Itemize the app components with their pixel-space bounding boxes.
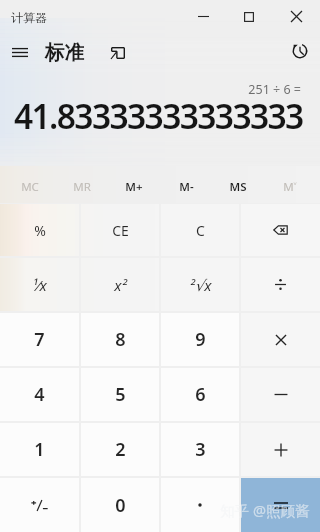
staticText: 知乎 @照顾酱	[220, 500, 310, 520]
button[interactable]	[241, 478, 320, 532]
staticText: 1	[34, 437, 45, 462]
staticText: MR	[73, 179, 91, 195]
staticText: 41.83333333333333	[14, 93, 303, 139]
button[interactable]: Maximize	[226, 0, 272, 33]
staticText: 3	[195, 437, 206, 462]
button[interactable]: Minimize	[180, 0, 226, 33]
button[interactable]: %	[0, 204, 79, 256]
button[interactable]: 9	[161, 313, 239, 366]
button[interactable]: 7	[0, 313, 79, 366]
staticText: 0	[115, 493, 126, 518]
staticText: 5	[115, 382, 126, 407]
staticText: MS	[229, 179, 247, 195]
button[interactable]	[241, 368, 320, 421]
button[interactable]: 1	[0, 423, 79, 476]
button[interactable]: 5	[81, 368, 159, 421]
button[interactable]: x²	[81, 258, 159, 311]
button[interactable]: ²√x	[161, 258, 239, 311]
button[interactable]: MS	[212, 171, 264, 203]
button[interactable]	[241, 313, 320, 366]
staticText: 6	[195, 382, 206, 407]
button[interactable]	[0, 478, 79, 532]
staticText: 4	[34, 382, 45, 407]
staticText: C	[196, 221, 205, 240]
staticText: MC	[21, 179, 39, 195]
staticText: x²	[114, 275, 127, 295]
staticText: CE	[112, 221, 129, 240]
staticText: M+	[125, 179, 143, 195]
staticText: 标准	[45, 40, 84, 65]
button[interactable]: 8	[81, 313, 159, 366]
staticText: 9	[195, 327, 206, 352]
staticText: 251 ÷ 6 =	[248, 81, 301, 98]
staticText: 7	[34, 327, 45, 352]
button[interactable]: History	[284, 35, 316, 67]
button[interactable]: Keep on top	[104, 39, 132, 67]
staticText: M-	[179, 179, 194, 195]
button[interactable]: M˅	[264, 171, 316, 203]
button[interactable]: C	[161, 204, 239, 256]
button[interactable]: CE	[81, 204, 159, 256]
staticText: ²√x	[189, 275, 212, 295]
button[interactable]	[241, 423, 320, 476]
staticText: 计算器	[11, 10, 47, 25]
button[interactable]: Menu	[2, 35, 38, 69]
staticText: M˅	[283, 179, 297, 195]
button[interactable]: Close	[272, 0, 320, 33]
staticText: %	[34, 221, 46, 240]
button[interactable]: M+	[108, 171, 160, 203]
button[interactable]	[161, 478, 239, 532]
button[interactable]: ¹⁄x	[0, 258, 79, 311]
button[interactable]: 2	[81, 423, 159, 476]
button[interactable]: 4	[0, 368, 79, 421]
button[interactable]	[241, 258, 320, 311]
button[interactable]: Backspace	[241, 204, 320, 256]
button[interactable]: M-	[160, 171, 212, 203]
button[interactable]: 3	[161, 423, 239, 476]
button[interactable]: 6	[161, 368, 239, 421]
button[interactable]: MR	[56, 171, 108, 203]
button[interactable]: 0	[81, 478, 159, 532]
button[interactable]: MC	[4, 171, 56, 203]
staticText: ¹⁄x	[32, 275, 47, 295]
staticText: 8	[115, 327, 126, 352]
staticText: 2	[115, 437, 126, 462]
